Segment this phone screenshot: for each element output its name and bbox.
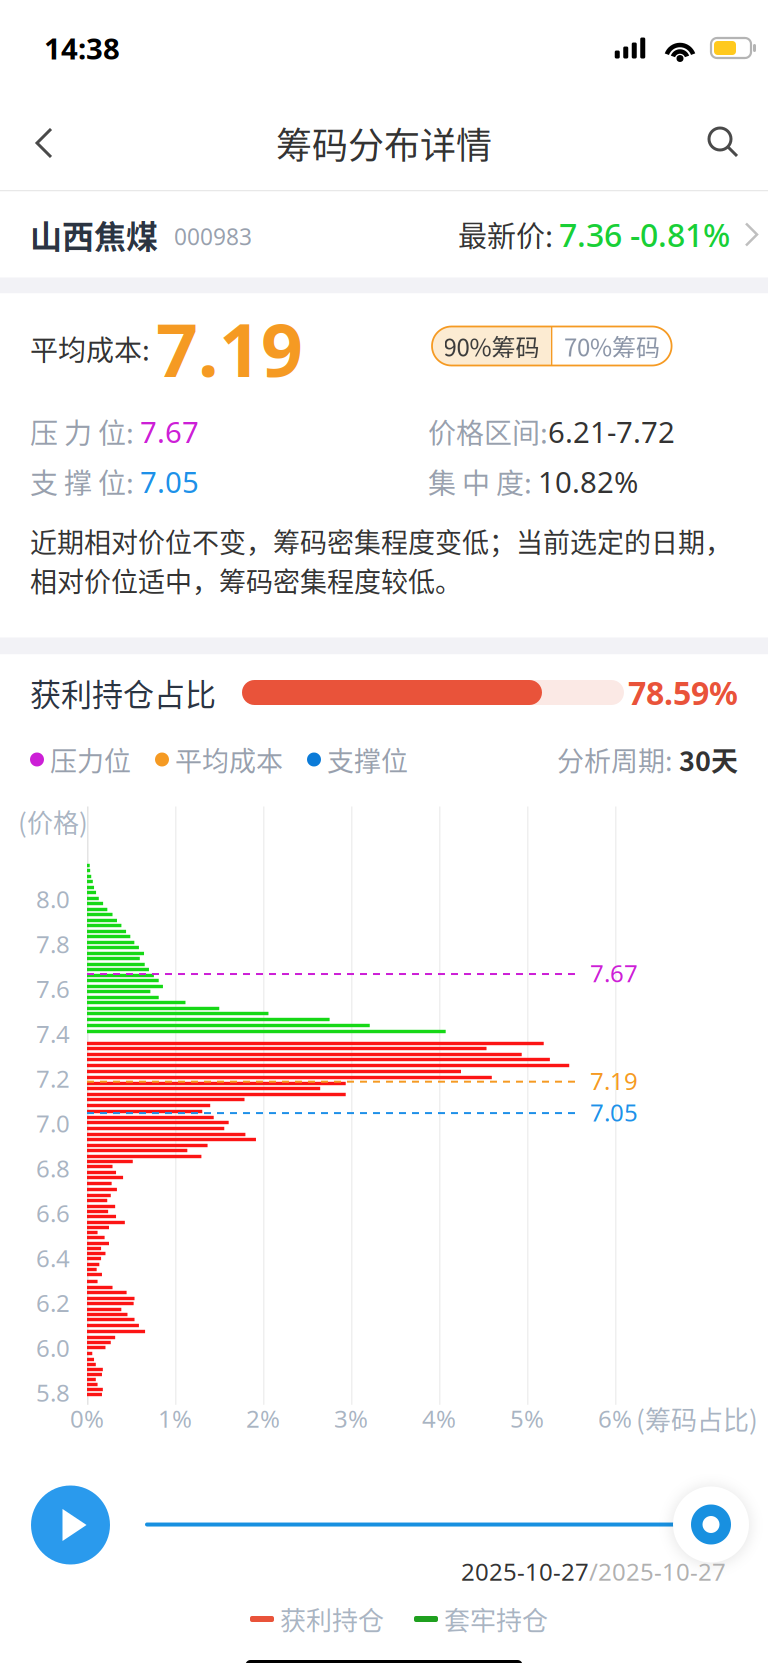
staticText: 近期相对价位不变，筹码密集程度变低；当前选定的日期，相对价位适中，筹码密集程度较… (30, 521, 732, 600)
staticText: 最新价: (458, 213, 559, 255)
staticText: 平均成本 (169, 740, 283, 779)
staticText: 压力位 (44, 740, 131, 779)
staticText: 价格区间: (428, 411, 548, 452)
staticText: 78.59% (628, 671, 738, 714)
staticText: 7.0 (36, 1107, 70, 1139)
button[interactable]: 90%筹码 (432, 326, 551, 365)
button[interactable]: 山西焦煤 (0, 191, 768, 277)
staticText: 7.19 (156, 300, 303, 397)
staticText: 7.67 (590, 957, 638, 989)
staticText: 6.21-7.72 (548, 412, 675, 451)
staticText: 套牢持仓 (438, 1600, 548, 1638)
staticText: 2025-10-27 (461, 1555, 589, 1587)
staticText: 70%筹码 (564, 329, 660, 363)
staticText: 8.0 (36, 883, 70, 915)
button[interactable]: 70%筹码 (553, 326, 672, 365)
staticText: 7.05 (140, 462, 199, 501)
staticText: 6.0 (36, 1332, 70, 1364)
staticText: 分析周期: (557, 740, 679, 779)
staticText: 获利持仓 (274, 1600, 384, 1638)
staticText: 30天 (679, 740, 738, 779)
staticText: 6.8 (36, 1152, 70, 1184)
staticText: 1% (158, 1403, 192, 1434)
staticText: 压 力 位: (30, 411, 140, 452)
staticText: (价格) (18, 802, 88, 840)
button[interactable]: Play (31, 1485, 110, 1564)
staticText: 支撑位 (321, 740, 408, 779)
staticText: 90%筹码 (443, 329, 539, 363)
staticText: 2% (246, 1403, 280, 1434)
staticText: 集 中 度: (428, 461, 538, 502)
staticText: 7.19 (590, 1065, 638, 1097)
staticText: 5% (510, 1403, 544, 1434)
staticText: 3% (334, 1403, 368, 1434)
staticText: 7.6 (36, 973, 70, 1005)
staticText: 筹码分布详情 (276, 117, 492, 169)
staticText: 7.4 (36, 1018, 70, 1049)
button[interactable]: Back (4, 96, 84, 190)
staticText: 6.6 (36, 1197, 70, 1229)
staticText: 0% (70, 1403, 104, 1434)
staticText: 6.4 (36, 1242, 70, 1274)
staticText: (筹码占比) (630, 1400, 758, 1437)
staticText: 7.2 (36, 1062, 70, 1094)
staticText: 7.05 (590, 1096, 638, 1128)
staticText: 6% (598, 1403, 632, 1434)
staticText: 7.67 (140, 412, 199, 451)
staticText: 获利持仓占比 (30, 670, 216, 715)
staticText: 7.36 -0.81% (559, 213, 730, 256)
staticText: 10.82% (538, 462, 638, 501)
staticText: 4% (422, 1403, 456, 1434)
staticText: /2025-10-27 (589, 1555, 726, 1587)
button[interactable]: Search (684, 96, 764, 190)
staticText: 山西焦煤 (30, 211, 158, 258)
staticText: 7.8 (36, 928, 70, 960)
staticText: 平均成本: (30, 328, 156, 369)
staticText: 支 撑 位: (30, 461, 140, 502)
staticText: 000983 (174, 221, 252, 251)
staticText: 14:38 (44, 28, 120, 67)
staticText: 6.2 (36, 1287, 70, 1319)
staticText: 5.8 (36, 1376, 70, 1408)
